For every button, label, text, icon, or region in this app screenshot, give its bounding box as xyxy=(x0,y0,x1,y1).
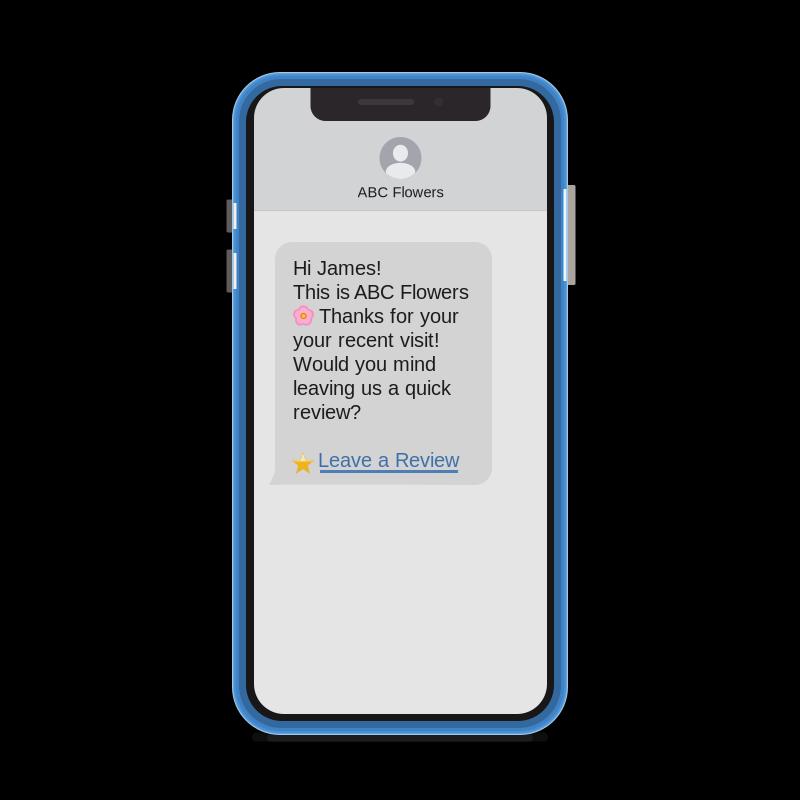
staticText: Leave a Review xyxy=(318,449,459,471)
staticText: ABC Flowers xyxy=(357,184,443,200)
staticText: your recent visit! xyxy=(293,329,440,351)
staticText: Thanks for your xyxy=(314,305,459,327)
staticText: Hi James! xyxy=(293,257,382,279)
button[interactable]: Leave a Review xyxy=(293,450,481,476)
staticText: leaving us a quick xyxy=(293,377,451,399)
staticText: Would you mind xyxy=(293,353,436,375)
staticText: This is ABC Flowers xyxy=(293,281,469,303)
staticText: review? xyxy=(293,401,361,423)
